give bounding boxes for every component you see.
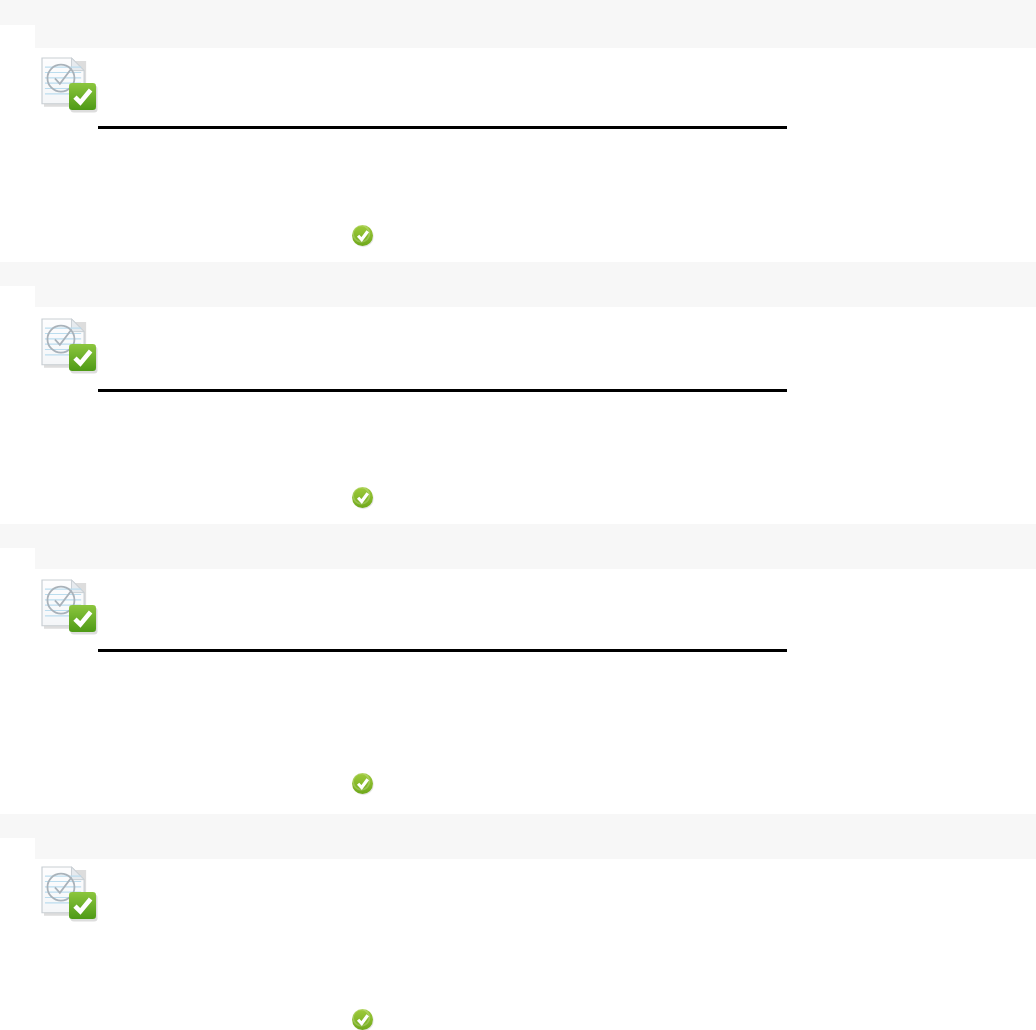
button[interactable]: Verified (352, 225, 373, 246)
button[interactable]: Signed document (42, 58, 96, 110)
button[interactable]: Signed document (42, 319, 96, 371)
button[interactable]: Verified (352, 773, 373, 794)
button[interactable]: Signed document (0, 814, 1036, 1030)
button[interactable]: Verified (352, 487, 373, 508)
button[interactable]: Verified (352, 1009, 373, 1030)
button[interactable]: Signed document (0, 262, 1036, 524)
button[interactable]: Signed document (0, 0, 1036, 262)
button[interactable]: Signed document (42, 867, 96, 919)
button[interactable]: Signed document (42, 580, 96, 632)
button[interactable]: Signed document (0, 524, 1036, 814)
